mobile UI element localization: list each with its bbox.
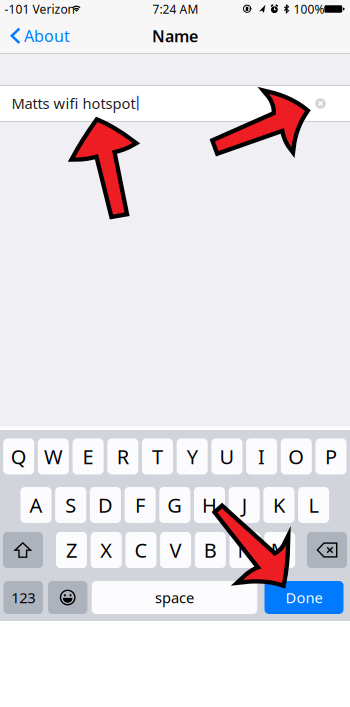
button[interactable]: J <box>229 487 260 523</box>
button[interactable]: R <box>107 438 138 474</box>
staticText: E <box>83 443 94 470</box>
button[interactable]: Clear text <box>309 89 332 118</box>
staticText: About <box>24 25 70 46</box>
button[interactable]: Z <box>56 532 87 568</box>
staticText: X <box>100 537 112 563</box>
staticText: R <box>117 443 129 470</box>
button[interactable]: F <box>125 487 156 523</box>
button[interactable]: I <box>246 438 277 474</box>
button[interactable]: Delete <box>307 532 347 568</box>
button[interactable]: 123 <box>3 581 43 614</box>
button[interactable]: P <box>315 438 346 474</box>
staticText: 100% <box>293 1 324 17</box>
staticText: U <box>219 443 234 470</box>
staticText: S <box>65 492 76 518</box>
staticText: Q <box>11 443 27 470</box>
button[interactable]: Q <box>3 438 34 474</box>
staticText: space <box>155 588 194 607</box>
staticText: D <box>98 492 113 518</box>
staticText: C <box>134 537 147 563</box>
button[interactable]: O <box>281 438 312 474</box>
button[interactable]: S <box>55 487 86 523</box>
button[interactable]: N <box>229 532 260 568</box>
button[interactable]: W <box>38 438 69 474</box>
button[interactable]: D <box>90 487 121 523</box>
staticText: I <box>258 443 265 470</box>
button[interactable]: A <box>20 487 51 523</box>
staticText: K <box>273 492 285 518</box>
staticText: Y <box>187 443 198 470</box>
staticText: J <box>242 492 247 518</box>
staticText: B <box>204 537 217 563</box>
button[interactable]: Emoji keyboard <box>48 581 87 614</box>
staticText: T <box>152 443 163 470</box>
staticText: A <box>29 492 42 518</box>
button[interactable]: B <box>195 532 226 568</box>
button[interactable]: About <box>0 17 78 54</box>
button[interactable]: H <box>194 487 225 523</box>
staticText: Matts wifi hotspot <box>11 93 135 113</box>
button[interactable]: Done <box>264 581 343 614</box>
staticText: M <box>271 537 289 563</box>
staticText: 123 <box>11 588 35 607</box>
staticText: Done <box>285 588 322 607</box>
staticText: O <box>288 443 304 470</box>
staticText: P <box>325 443 337 470</box>
button[interactable]: L <box>298 487 329 523</box>
staticText: G <box>167 492 182 518</box>
button[interactable]: E <box>73 438 104 474</box>
staticText: 7:24 AM <box>152 1 198 17</box>
staticText: L <box>309 492 319 518</box>
staticText: N <box>237 537 252 563</box>
button[interactable]: G <box>159 487 190 523</box>
button[interactable]: space <box>92 581 257 614</box>
button[interactable]: X <box>91 532 122 568</box>
button[interactable]: K <box>263 487 294 523</box>
staticText: F <box>135 492 145 518</box>
staticText: V <box>170 537 182 563</box>
staticText: -101 Verizon <box>4 1 74 17</box>
staticText: W <box>44 443 63 470</box>
button[interactable]: T <box>142 438 173 474</box>
button[interactable]: Y <box>177 438 208 474</box>
button[interactable]: Shift <box>3 532 43 568</box>
staticText: Name <box>152 25 198 47</box>
button[interactable]: C <box>125 532 156 568</box>
button[interactable]: M <box>264 532 295 568</box>
button[interactable]: U <box>211 438 242 474</box>
staticText: Z <box>66 537 77 563</box>
staticText: H <box>202 492 217 518</box>
button[interactable]: V <box>160 532 191 568</box>
